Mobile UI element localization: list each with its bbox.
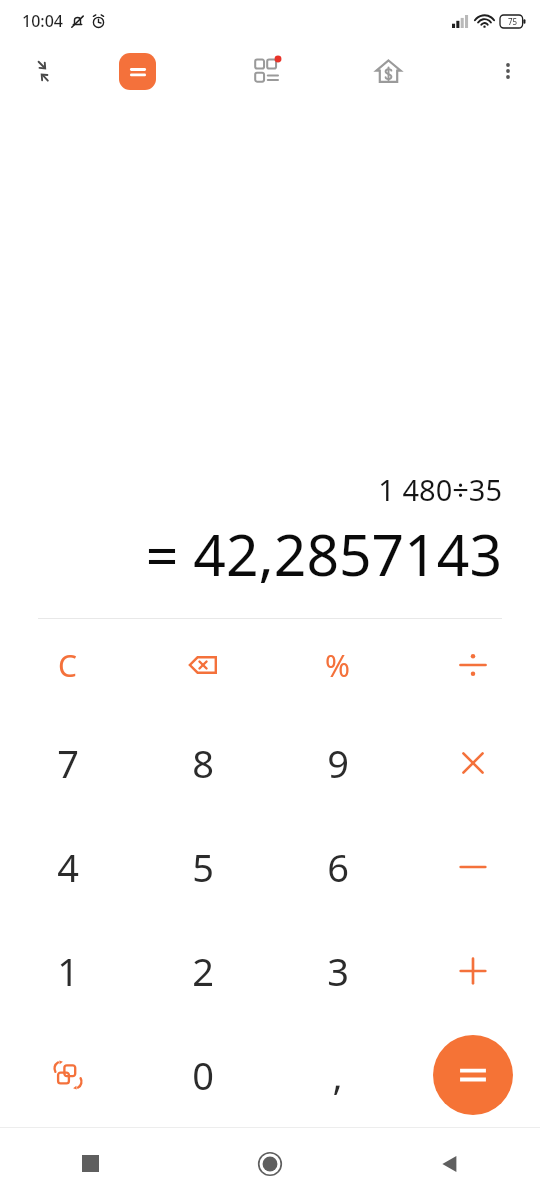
button[interactable]: 1 — [0, 919, 135, 1023]
button[interactable]: Recents — [0, 1127, 180, 1200]
button[interactable]: Minus — [405, 815, 540, 919]
button[interactable]: C — [0, 619, 135, 711]
staticText: 2 — [192, 945, 214, 997]
button[interactable]: Divide — [405, 619, 540, 711]
button[interactable]: Widgets — [245, 47, 293, 95]
button[interactable]: 7 — [0, 711, 135, 815]
staticText: 0 — [192, 1049, 214, 1101]
staticText: 1 — [57, 945, 79, 997]
button[interactable]: Calculator — [113, 47, 161, 95]
staticText: 75 — [508, 16, 518, 27]
staticText: 3 — [327, 945, 349, 997]
button[interactable]: 0 — [135, 1023, 270, 1127]
staticText: 1 480÷35 — [38, 470, 502, 509]
button[interactable]: 9 — [270, 711, 405, 815]
button[interactable]: Home — [180, 1127, 360, 1200]
staticText: 4 — [57, 841, 79, 893]
button[interactable]: More options — [486, 49, 530, 93]
button[interactable]: 8 — [135, 711, 270, 815]
staticText: , — [332, 1049, 343, 1101]
button[interactable]: Loan — [364, 47, 412, 95]
button[interactable]: Multiply — [405, 711, 540, 815]
staticText: 8 — [192, 737, 214, 789]
button[interactable]: % — [270, 619, 405, 711]
staticText: 10:04 — [22, 10, 63, 32]
button[interactable]: Plus — [405, 919, 540, 1023]
button[interactable]: Collapse — [21, 49, 65, 93]
button[interactable]: Back — [360, 1127, 540, 1200]
staticText: C — [58, 645, 77, 686]
staticText: % — [325, 645, 350, 686]
button[interactable]: 3 — [270, 919, 405, 1023]
button[interactable]: 5 — [135, 815, 270, 919]
button[interactable]: Equals — [433, 1035, 513, 1115]
button[interactable]: 4 — [0, 815, 135, 919]
staticText: 9 — [327, 737, 349, 789]
button[interactable]: , — [270, 1023, 405, 1127]
staticText: 5 — [192, 841, 214, 893]
button[interactable]: Backspace — [135, 619, 270, 711]
staticText: = 42,2857143 — [38, 515, 502, 593]
button[interactable]: 2 — [135, 919, 270, 1023]
button[interactable]: Converter — [0, 1023, 135, 1127]
button[interactable]: 6 — [270, 815, 405, 919]
staticText: 6 — [327, 841, 349, 893]
staticText: 7 — [57, 737, 79, 789]
